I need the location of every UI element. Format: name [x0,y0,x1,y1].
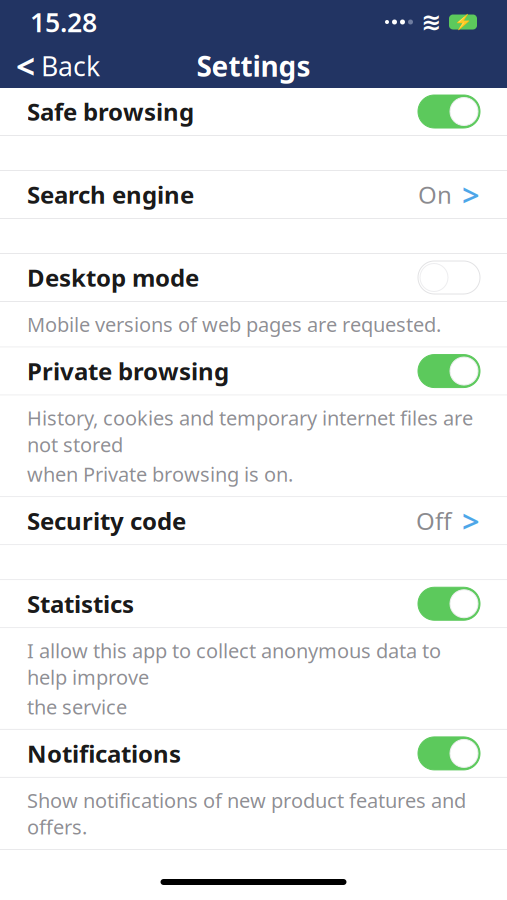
staticText: Settings [196,47,310,85]
staticText: > [462,174,480,215]
staticText: Security code [27,505,186,537]
staticText: I allow this app to collect anonymous da… [27,637,441,690]
staticText: History, cookies and temporary internet … [27,405,473,458]
staticText: > [462,500,480,541]
staticText: Desktop mode [27,262,199,293]
staticText: when Private browsing is on. [27,461,293,487]
staticText: 15.28 [30,4,97,40]
staticText: the service [27,693,127,720]
staticText: Notifications [27,737,181,769]
staticText: ⚡ [454,14,472,30]
staticText: On [418,179,452,210]
staticText: Off [416,505,452,537]
button[interactable]: Safe browsing [0,88,507,135]
button[interactable]: Desktop mode [0,254,507,301]
staticText: Statistics [27,588,134,620]
staticText: Safe browsing [27,96,194,127]
staticText: Private browsing [27,355,229,387]
button[interactable]: < [0,44,116,88]
staticText: Show notifications of new product featur… [27,787,466,840]
button[interactable]: Notifications [0,730,507,777]
staticText: Search engine [27,179,194,210]
button[interactable]: Search engine [0,171,507,218]
staticText: Back [41,48,100,84]
staticText: ≋ [421,8,441,36]
button[interactable]: Private browsing [0,348,507,395]
button[interactable]: Clear browser data [0,850,507,897]
button[interactable]: Statistics [0,580,507,627]
button[interactable]: Security code [0,497,507,544]
staticText: Mobile versions of web pages are request… [27,311,441,338]
staticText: Clear browser data [27,858,251,889]
staticText: < [16,44,35,88]
